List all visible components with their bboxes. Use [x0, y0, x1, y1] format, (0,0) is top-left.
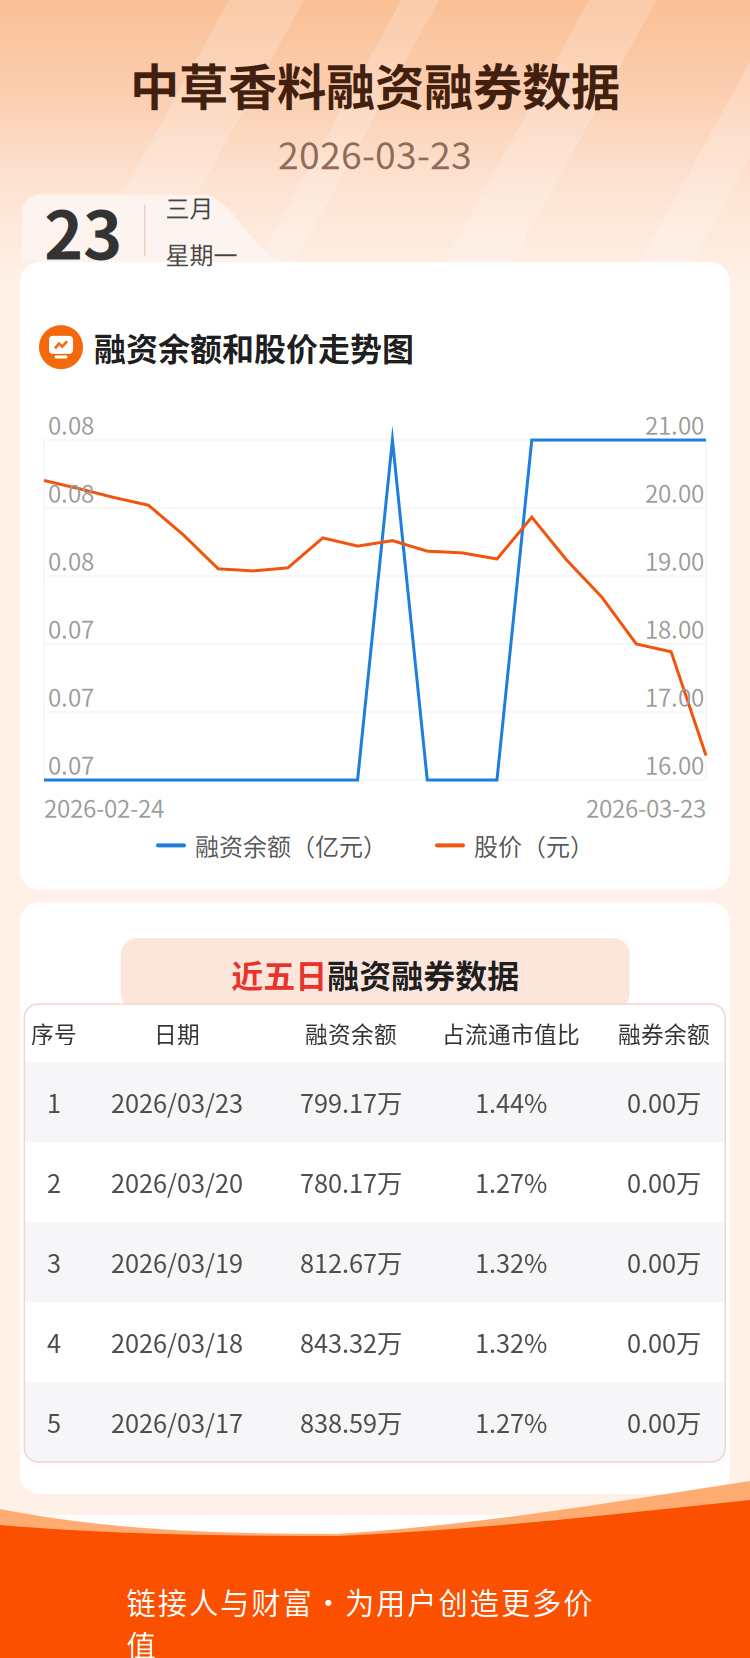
staticText: 21.00 — [645, 407, 704, 442]
staticText: 2026/03/18 — [111, 1324, 243, 1360]
staticText: 838.59万 — [300, 1404, 402, 1440]
staticText: 17.00 — [645, 679, 704, 714]
staticText: 4 — [47, 1324, 61, 1360]
staticText: 0.07 — [48, 679, 94, 714]
staticText: 0.00万 — [627, 1404, 701, 1440]
staticText: 0.08 — [48, 543, 94, 578]
staticText: 3 — [47, 1244, 61, 1280]
staticText: 0.00万 — [627, 1244, 701, 1280]
staticText: 2026-03-23 — [586, 790, 706, 825]
staticText: 1.27% — [475, 1404, 547, 1440]
staticText: 2026/03/17 — [111, 1404, 243, 1440]
staticText: 812.67万 — [300, 1244, 402, 1280]
staticText: 18.00 — [645, 611, 704, 646]
staticText: 1.44% — [475, 1084, 547, 1120]
staticText: 0.00万 — [627, 1164, 701, 1200]
staticText: 中草香料融资融券数据 — [130, 48, 620, 119]
staticText: 0.08 — [48, 407, 94, 442]
staticText: 23 — [44, 182, 122, 279]
staticText: 近五日 — [231, 951, 327, 997]
staticText: 融资融券数据 — [327, 951, 519, 997]
staticText: 三月 — [165, 190, 213, 224]
staticText: 1.32% — [475, 1324, 547, 1360]
staticText: 0.00万 — [627, 1324, 701, 1360]
staticText: 股价（元） — [474, 828, 594, 863]
staticText: 2026/03/23 — [111, 1084, 243, 1120]
staticText: 2026/03/19 — [111, 1244, 243, 1280]
staticText: 1 — [47, 1084, 61, 1120]
staticText: 1.27% — [475, 1164, 547, 1200]
staticText: 占流通市值比 — [442, 1017, 580, 1049]
staticText: 0.07 — [48, 747, 94, 782]
staticText: 日期 — [154, 1017, 200, 1049]
staticText: 5 — [47, 1404, 61, 1440]
staticText: 融资余额 — [305, 1017, 397, 1049]
staticText: 链接人与财富·为用户创造更多价值 — [126, 1580, 623, 1622]
staticText: 融资余额和股价走势图 — [94, 324, 414, 370]
staticText: 2026-02-24 — [44, 790, 164, 825]
staticText: 799.17万 — [300, 1084, 402, 1120]
staticText: 1.32% — [475, 1244, 547, 1280]
staticText: 20.00 — [645, 475, 704, 510]
staticText: 序号 — [31, 1017, 77, 1049]
staticText: 0.07 — [48, 611, 94, 646]
staticText: 2026-03-23 — [278, 126, 472, 180]
staticText: 融券余额 — [618, 1017, 710, 1049]
staticText: 2 — [47, 1164, 61, 1200]
staticText: 融资余额（亿元） — [195, 828, 387, 863]
staticText: 16.00 — [645, 747, 704, 782]
staticText: 星期一 — [165, 236, 237, 271]
staticText: 0.00万 — [627, 1084, 701, 1120]
staticText: 780.17万 — [300, 1164, 402, 1200]
staticText: 843.32万 — [300, 1324, 402, 1360]
staticText: 19.00 — [645, 543, 704, 578]
staticText: 0.08 — [48, 475, 94, 510]
staticText: 2026/03/20 — [111, 1164, 243, 1200]
